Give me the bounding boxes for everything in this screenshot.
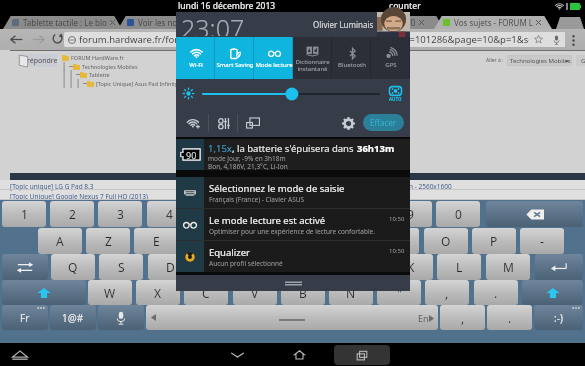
staticText: S: [118, 259, 125, 275]
button[interactable]: ": [377, 280, 421, 305]
button[interactable]: :-): [534, 305, 583, 330]
button[interactable]: [486, 201, 583, 227]
button[interactable]: Technologies Mobiles: [507, 55, 572, 66]
button[interactable]: Voir les nouv: [127, 15, 233, 29]
staticText: 1: [21, 206, 28, 222]
button[interactable]: Tablette tactile : Le blo: [12, 15, 115, 29]
button[interactable]: Bluetooth: [332, 37, 371, 79]
staticText: counter: [389, 0, 421, 12]
button[interactable]: H: [293, 254, 337, 280]
button[interactable]: D: [148, 254, 192, 280]
button[interactable]: forum.hardware.fr/forum2.php?config=hfr.…: [64, 32, 565, 47]
button[interactable]: [2, 254, 48, 280]
button[interactable]: [98, 305, 144, 330]
button[interactable]: O: [424, 228, 468, 254]
button[interactable]: [522, 280, 583, 305]
button[interactable]: Brightness: [203, 86, 379, 102]
button[interactable]: Auto brightness: [387, 85, 404, 102]
button[interactable]: J: [341, 254, 385, 280]
button[interactable]: 4: [147, 201, 191, 227]
button[interactable]: Audio settings: [209, 111, 237, 135]
button[interactable]: .: [487, 305, 532, 330]
button[interactable]: 1@#: [50, 305, 96, 330]
button[interactable]: M: [486, 254, 530, 280]
button[interactable]: En: [146, 305, 438, 330]
button[interactable]: 1: [2, 201, 46, 227]
button[interactable]: ,: [440, 305, 485, 330]
button[interactable]: Mode lecture: [254, 37, 293, 79]
staticText: Optimiser pour une expérience de lecture…: [209, 227, 375, 236]
button[interactable]: Bookmark: [529, 32, 547, 47]
button[interactable]: P: [472, 228, 516, 254]
button[interactable]: [535, 254, 583, 280]
staticText: C: [202, 285, 210, 301]
button[interactable]: 6: [243, 201, 287, 227]
button[interactable]: Settings: [336, 111, 360, 135]
button[interactable]: Sélectionnez le mode de saisie: [176, 177, 410, 208]
button[interactable]: -: [520, 228, 564, 254]
button[interactable]: 90: [176, 139, 410, 170]
button[interactable]: Y: [279, 228, 323, 254]
button[interactable]: E: [134, 228, 178, 254]
button[interactable]: A: [38, 228, 82, 254]
button[interactable]: 7: [291, 201, 335, 227]
button[interactable]: R: [183, 228, 227, 254]
button[interactable]: V: [233, 280, 277, 305]
button[interactable]: S: [99, 254, 143, 280]
staticText: ": [397, 285, 402, 301]
button[interactable]: [2, 280, 86, 305]
button[interactable]: 5: [195, 201, 239, 227]
staticText: Bluetooth: [338, 61, 366, 69]
button[interactable]: .: [474, 280, 518, 305]
button[interactable]: Dictionnaire instantané: [293, 37, 332, 79]
button[interactable]: User profile: [377, 12, 410, 37]
staticText: 5: [214, 206, 221, 222]
button[interactable]: Back: [212, 343, 262, 366]
button[interactable]: N: [329, 280, 373, 305]
button[interactable]: 8: [339, 201, 383, 227]
staticText: M: [503, 259, 514, 275]
button[interactable]: F70: [402, 15, 437, 29]
button[interactable]: K: [389, 254, 433, 280]
button[interactable]: Voice search: [547, 32, 565, 47]
button[interactable]: Home: [274, 343, 324, 366]
button[interactable]: 2: [50, 201, 94, 227]
button[interactable]: C: [184, 280, 228, 305]
staticText: T: [250, 233, 257, 249]
button[interactable]: Recent apps: [334, 345, 390, 365]
button[interactable]: W: [88, 280, 132, 305]
button[interactable]: Effacer: [363, 114, 404, 131]
button[interactable]: Reload: [48, 29, 66, 47]
button[interactable]: ,: [425, 280, 469, 305]
button[interactable]: Hide keyboard: [8, 343, 32, 366]
button[interactable]: 3: [98, 201, 142, 227]
button[interactable]: X: [136, 280, 180, 305]
button[interactable]: G: [244, 254, 288, 280]
button[interactable]: Vos sujets - FORUM L: [443, 15, 545, 29]
button[interactable]: 9: [388, 201, 432, 227]
button[interactable]: F: [196, 254, 240, 280]
button[interactable]: Z: [86, 228, 130, 254]
button[interactable]: Q: [51, 254, 95, 280]
staticText: lundi 16 décembre 2013: [178, 0, 276, 12]
button[interactable]: Wi-Fi settings: [180, 111, 208, 135]
button[interactable]: Forward: [28, 29, 48, 49]
button[interactable]: Wi-Fi: [176, 37, 215, 79]
button[interactable]: Le mode lecture est activé: [176, 209, 410, 240]
button[interactable]: Cast screen: [238, 111, 268, 135]
button[interactable]: U: [327, 228, 371, 254]
button[interactable]: Smart Saving: [215, 37, 254, 79]
button[interactable]: B: [281, 280, 325, 305]
button[interactable]: 0: [436, 201, 480, 227]
button[interactable]: Fr: [2, 305, 48, 330]
button[interactable]: Go: [576, 55, 585, 66]
button[interactable]: GPS: [371, 37, 410, 79]
button[interactable]: Back: [6, 29, 26, 49]
button[interactable]: L: [437, 254, 481, 280]
button[interactable]: New tab: [556, 15, 584, 29]
button[interactable]: Equalizer: [176, 241, 410, 272]
button[interactable]: I: [375, 228, 419, 254]
button[interactable]: Menu: [565, 30, 581, 50]
button[interactable]: répondre: [22, 54, 57, 67]
button[interactable]: T: [231, 228, 275, 254]
